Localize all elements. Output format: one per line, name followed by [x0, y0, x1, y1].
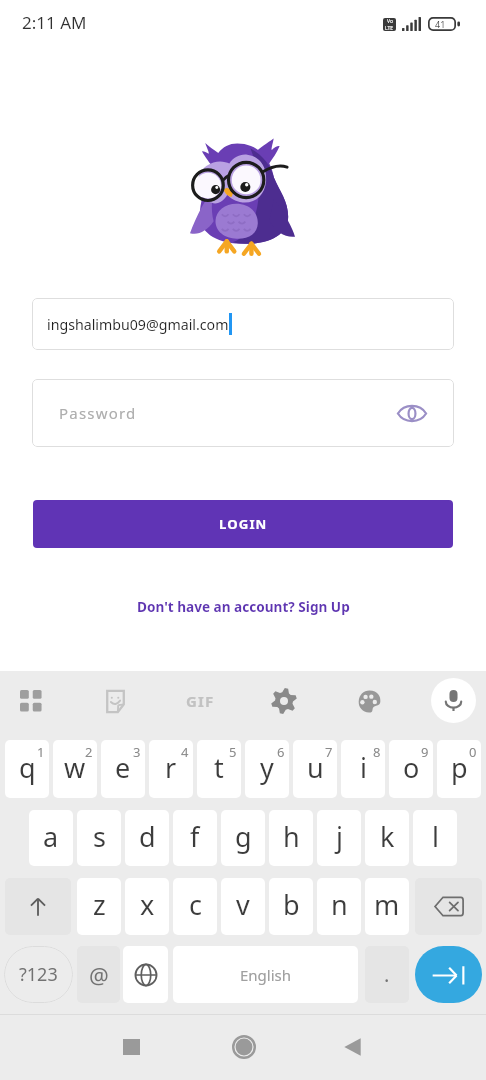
staticText: 8	[373, 743, 381, 761]
button[interactable]: b	[269, 878, 313, 935]
button[interactable]: j	[317, 810, 361, 866]
staticText: a	[43, 818, 59, 855]
button[interactable]: Enter	[415, 946, 482, 1003]
button[interactable]: Voice input	[431, 678, 476, 723]
button[interactable]: 0	[437, 740, 481, 798]
button[interactable]: Back	[315, 1015, 389, 1080]
button[interactable]: Backspace	[415, 878, 482, 935]
staticText: 0	[469, 743, 477, 761]
staticText: y	[260, 749, 274, 786]
staticText: ?123	[19, 962, 58, 987]
button[interactable]: 7	[293, 740, 337, 798]
staticText: 5	[229, 743, 237, 761]
button[interactable]: @	[77, 946, 120, 1003]
staticText: v	[236, 886, 250, 923]
staticText: GIF	[186, 691, 215, 711]
button[interactable]: Stickers	[93, 679, 137, 723]
button[interactable]: 2	[53, 740, 97, 798]
staticText: b	[283, 886, 300, 923]
button[interactable]: Settings	[262, 679, 306, 723]
staticText: j	[336, 818, 343, 855]
staticText: LOGIN	[219, 515, 268, 533]
staticText: English	[240, 965, 292, 985]
staticText: 41	[435, 18, 446, 30]
staticText: Password	[59, 403, 137, 423]
staticText: @	[89, 960, 109, 990]
button[interactable]: Language	[123, 946, 168, 1003]
button[interactable]: .	[365, 946, 409, 1003]
staticText: f	[190, 818, 200, 855]
staticText: Vo	[387, 18, 393, 25]
button[interactable]: Don't have an account? Sign Up	[131, 592, 356, 621]
staticText: Don't have an account? Sign Up	[137, 597, 350, 616]
staticText: r	[165, 749, 177, 786]
staticText: g	[235, 818, 252, 855]
staticText: l	[432, 818, 439, 855]
button[interactable]: 9	[389, 740, 433, 798]
button[interactable]: v	[221, 878, 265, 935]
button[interactable]: ?123	[4, 946, 73, 1003]
button[interactable]: Recents	[94, 1015, 168, 1080]
staticText: q	[19, 749, 36, 786]
button[interactable]: Password	[32, 379, 454, 447]
staticText: m	[374, 886, 400, 923]
button[interactable]: English	[173, 946, 358, 1003]
button[interactable]: c	[173, 878, 217, 935]
button[interactable]: l	[413, 810, 457, 866]
button[interactable]: 3	[101, 740, 145, 798]
staticText: t	[214, 749, 224, 786]
button[interactable]: s	[77, 810, 121, 866]
staticText: ingshalimbu09@gmail.com	[47, 315, 229, 334]
staticText: c	[189, 886, 202, 923]
staticText: 1	[37, 743, 45, 761]
staticText: 4	[181, 743, 189, 761]
button[interactable]: GIF	[178, 679, 222, 723]
staticText: LTE	[385, 25, 394, 31]
button[interactable]: Home	[207, 1015, 281, 1080]
button[interactable]: g	[221, 810, 265, 866]
button[interactable]: n	[317, 878, 361, 935]
button[interactable]: LOGIN	[33, 500, 453, 548]
button[interactable]: 1	[5, 740, 49, 798]
button[interactable]: ingshalimbu09@gmail.com	[32, 298, 454, 350]
staticText: u	[307, 749, 324, 786]
staticText: w	[64, 749, 86, 786]
staticText: o	[403, 749, 420, 786]
staticText: 3	[133, 743, 141, 761]
button[interactable]: h	[269, 810, 313, 866]
button[interactable]: Shift	[5, 878, 71, 935]
staticText: s	[93, 818, 106, 855]
staticText: e	[115, 749, 131, 786]
button[interactable]: Themes	[347, 679, 391, 723]
button[interactable]: Show password	[393, 394, 431, 432]
staticText: n	[331, 886, 348, 923]
button[interactable]: 4	[149, 740, 193, 798]
button[interactable]: 6	[245, 740, 289, 798]
staticText: .	[384, 961, 390, 988]
staticText: 2:11 AM	[22, 11, 87, 34]
button[interactable]: Apps	[9, 679, 53, 723]
button[interactable]: z	[77, 878, 121, 935]
button[interactable]: k	[365, 810, 409, 866]
staticText: h	[283, 818, 300, 855]
button[interactable]: d	[125, 810, 169, 866]
staticText: x	[140, 886, 155, 923]
staticText: z	[93, 886, 106, 923]
button[interactable]: m	[365, 878, 409, 935]
button[interactable]: 8	[341, 740, 385, 798]
button[interactable]: x	[125, 878, 169, 935]
staticText: 9	[421, 743, 429, 761]
staticText: 6	[277, 743, 285, 761]
staticText: k	[380, 818, 395, 855]
button[interactable]: f	[173, 810, 217, 866]
staticText: 7	[325, 743, 333, 761]
staticText: 2	[85, 743, 93, 761]
staticText: d	[139, 818, 156, 855]
button[interactable]: 5	[197, 740, 241, 798]
staticText: p	[451, 749, 468, 786]
staticText: i	[360, 749, 367, 786]
button[interactable]: a	[29, 810, 73, 866]
